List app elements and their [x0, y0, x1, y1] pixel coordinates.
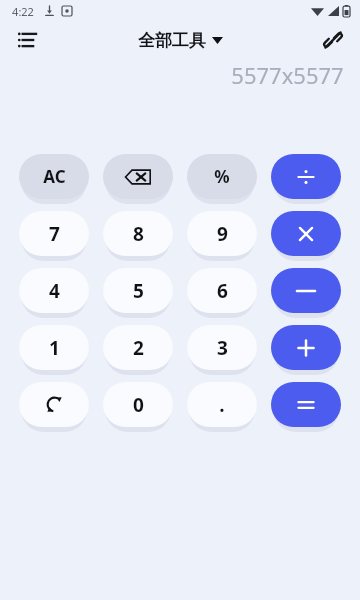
button[interactable]: 9	[187, 211, 257, 256]
button[interactable]: 6	[187, 268, 257, 313]
button[interactable]: Backspace	[103, 154, 173, 199]
button[interactable]: %	[187, 154, 257, 199]
button[interactable]: 7	[19, 211, 89, 256]
staticText: 全部工具	[138, 30, 206, 51]
staticText: 3	[217, 335, 228, 361]
staticText: %	[214, 165, 230, 188]
button[interactable]	[271, 382, 341, 427]
button[interactable]: 5	[103, 268, 173, 313]
button[interactable]: 0	[103, 382, 173, 427]
button[interactable]: AC	[19, 154, 89, 199]
staticText: AC	[43, 165, 66, 188]
button[interactable]: Unlink	[316, 23, 350, 57]
staticText: 5577x5577	[231, 60, 344, 90]
button[interactable]: 1	[19, 325, 89, 370]
staticText: 4:22	[12, 4, 34, 19]
staticText: 6	[217, 278, 228, 304]
staticText: 9	[217, 221, 228, 247]
button[interactable]: Convert	[19, 382, 89, 427]
button[interactable]: 4	[19, 268, 89, 313]
button[interactable]: 8	[103, 211, 173, 256]
staticText: 8	[133, 221, 144, 247]
button[interactable]	[271, 154, 341, 199]
button[interactable]: 3	[187, 325, 257, 370]
staticText: 7	[49, 221, 60, 247]
staticText: 0	[133, 392, 144, 418]
staticText: .	[219, 392, 225, 418]
button[interactable]: 全部工具	[138, 30, 223, 51]
button[interactable]	[271, 325, 341, 370]
staticText: 1	[49, 335, 60, 361]
staticText: 2	[133, 335, 144, 361]
button[interactable]	[271, 211, 341, 256]
button[interactable]: Menu	[10, 23, 44, 57]
staticText: 4	[49, 278, 60, 304]
button[interactable]: .	[187, 382, 257, 427]
staticText: 5	[133, 278, 144, 304]
button[interactable]: 2	[103, 325, 173, 370]
button[interactable]	[271, 268, 341, 313]
